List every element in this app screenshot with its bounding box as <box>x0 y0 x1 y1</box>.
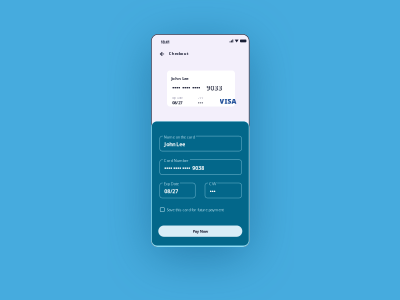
staticText: Pay Now <box>193 228 208 234</box>
staticText: Exp Date <box>164 181 179 186</box>
staticText: Save this card for future payment <box>167 207 224 212</box>
staticText: CVV <box>209 181 216 186</box>
button[interactable]: Pay Now <box>158 225 242 237</box>
staticText: ••• <box>197 100 203 105</box>
staticText: 18:41 <box>160 39 169 44</box>
staticText: 08/27 <box>172 100 182 105</box>
staticText: •••• •••• •••• 9038 <box>164 164 204 171</box>
button[interactable]: Save this card for future payment <box>160 207 224 212</box>
staticText: Checkout <box>169 51 189 56</box>
staticText: Exp Date <box>172 96 183 100</box>
staticText: Name on the card <box>164 134 195 139</box>
staticText: Card Number <box>164 158 189 163</box>
staticText: 9033 <box>206 84 222 92</box>
button[interactable]: Back <box>157 50 166 58</box>
staticText: •••• •••• •••• <box>172 84 200 91</box>
staticText: John Lee <box>171 76 188 81</box>
staticText: VISA <box>220 97 237 106</box>
staticText: CVV <box>197 96 203 100</box>
staticText: John Lee <box>164 141 185 148</box>
staticText: ••• <box>209 188 215 195</box>
staticText: 08/27 <box>164 188 178 195</box>
